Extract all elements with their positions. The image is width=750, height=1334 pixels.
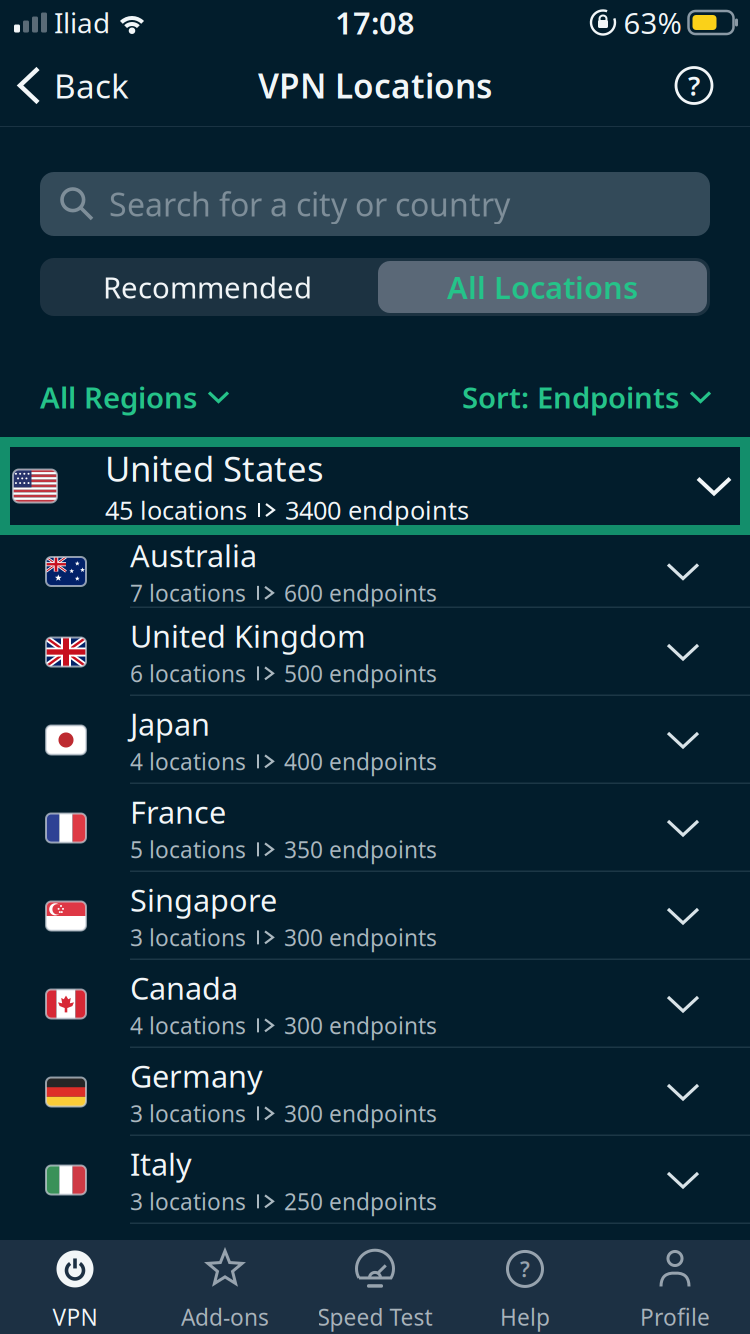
staticText: Recommended	[103, 267, 312, 306]
staticText: Profile	[640, 1302, 710, 1332]
staticText: ?	[688, 67, 700, 104]
staticText: 3 locations	[130, 922, 246, 952]
staticText: 6 locations	[130, 658, 246, 688]
staticText: 7 locations	[130, 578, 246, 608]
staticText: 4 locations	[130, 1010, 246, 1040]
staticText: 250 endpoints	[284, 1186, 437, 1216]
staticText: Add-ons	[181, 1302, 269, 1332]
staticText: 5 locations	[130, 834, 246, 864]
staticText: 3400 endpoints	[285, 493, 469, 527]
staticText: Speed Test	[317, 1302, 432, 1332]
button[interactable]: All Locations	[375, 258, 710, 316]
button[interactable]: Help	[450, 1242, 600, 1332]
staticText: Back	[54, 63, 129, 108]
staticText: Iliad	[54, 4, 110, 41]
staticText: Australia	[130, 535, 257, 576]
staticText: Canada	[130, 968, 238, 1008]
staticText: Germany	[130, 1056, 263, 1096]
staticText: 300 endpoints	[284, 1010, 437, 1040]
staticText: Sort: Endpoints	[462, 377, 679, 417]
button[interactable]: All Regions	[40, 377, 228, 417]
staticText: 3 locations	[130, 1098, 246, 1128]
staticText: 63%	[623, 3, 681, 42]
staticText: All Locations	[447, 266, 638, 308]
button[interactable]: Help	[676, 67, 750, 104]
staticText: 3 locations	[130, 1186, 246, 1216]
button[interactable]: Singapore	[0, 872, 750, 960]
staticText: Japan	[130, 704, 210, 744]
button[interactable]: Italy	[0, 1136, 750, 1224]
staticText: 4 locations	[130, 746, 246, 776]
button[interactable]: VPN	[0, 1242, 150, 1332]
button[interactable]: United Kingdom	[0, 608, 750, 696]
staticText: 17:08	[335, 2, 415, 43]
staticText: 300 endpoints	[284, 922, 437, 952]
button[interactable]: Back	[0, 63, 129, 108]
staticText: Help	[500, 1302, 550, 1332]
button[interactable]: Germany	[0, 1048, 750, 1136]
button[interactable]: Canada	[0, 960, 750, 1048]
button[interactable]: United States	[0, 437, 750, 535]
button[interactable]: Add-ons	[150, 1242, 300, 1332]
staticText: VPN	[52, 1302, 97, 1332]
staticText: Singapore	[130, 880, 277, 920]
staticText: France	[130, 792, 226, 832]
staticText: 350 endpoints	[284, 834, 437, 864]
button[interactable]: Search for a city or country	[0, 172, 750, 236]
staticText: All Regions	[40, 377, 197, 417]
button[interactable]: Japan	[0, 696, 750, 784]
staticText: Search for a city or country	[109, 183, 510, 225]
staticText: 400 endpoints	[284, 746, 437, 776]
button[interactable]: France	[0, 784, 750, 872]
button[interactable]: Speed Test	[300, 1242, 450, 1332]
staticText: VPN Locations	[258, 63, 492, 108]
staticText: ?	[520, 1254, 530, 1283]
button[interactable]: Australia	[0, 535, 750, 608]
staticText: 300 endpoints	[284, 1098, 437, 1128]
staticText: 500 endpoints	[284, 658, 437, 688]
staticText: United Kingdom	[130, 616, 366, 656]
button[interactable]: Sort: Endpoints	[462, 377, 710, 417]
staticText: United States	[105, 445, 324, 491]
button[interactable]: Recommended	[40, 258, 375, 316]
staticText: 45 locations	[105, 493, 247, 527]
button[interactable]: Profile	[600, 1242, 750, 1332]
staticText: Italy	[130, 1144, 192, 1184]
staticText: 600 endpoints	[284, 578, 437, 608]
